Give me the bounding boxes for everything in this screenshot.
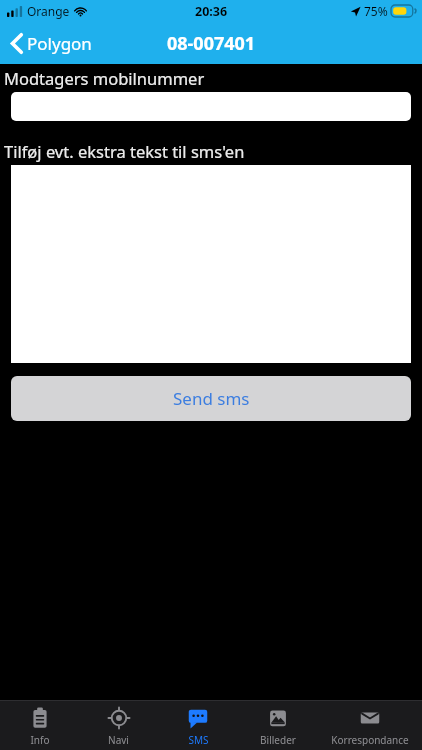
staticText: Send sms (173, 387, 250, 410)
staticText: Info (30, 733, 50, 746)
button[interactable]: Correspondence (318, 701, 422, 750)
button[interactable]: Pictures (238, 701, 318, 750)
staticText: Modtagers mobilnummer (4, 67, 205, 89)
staticText: Navi (108, 733, 129, 746)
staticText: Korrespondance (331, 733, 409, 746)
other: Info (29, 707, 51, 729)
button[interactable] (11, 92, 411, 121)
other: Navigate (108, 707, 130, 729)
other: Pictures (267, 707, 289, 729)
button[interactable]: Send sms (11, 376, 411, 421)
other: SMS (187, 707, 209, 729)
staticText: Tilføj evt. ekstra tekst til sms'en (4, 140, 245, 162)
staticText: Polygon (27, 32, 92, 55)
button[interactable]: SMS (158, 701, 238, 750)
staticText: 08-007401 (167, 31, 256, 56)
staticText: 20:36 (195, 3, 228, 20)
button[interactable]: Info (0, 701, 79, 750)
staticText: Orange (27, 3, 70, 19)
button[interactable]: Polygon (0, 27, 102, 60)
button[interactable]: Navigate (79, 701, 158, 750)
staticText: Billeder (260, 733, 296, 746)
staticText: 75% (364, 3, 388, 19)
staticText: SMS (188, 733, 209, 746)
other: Correspondence (359, 707, 381, 729)
